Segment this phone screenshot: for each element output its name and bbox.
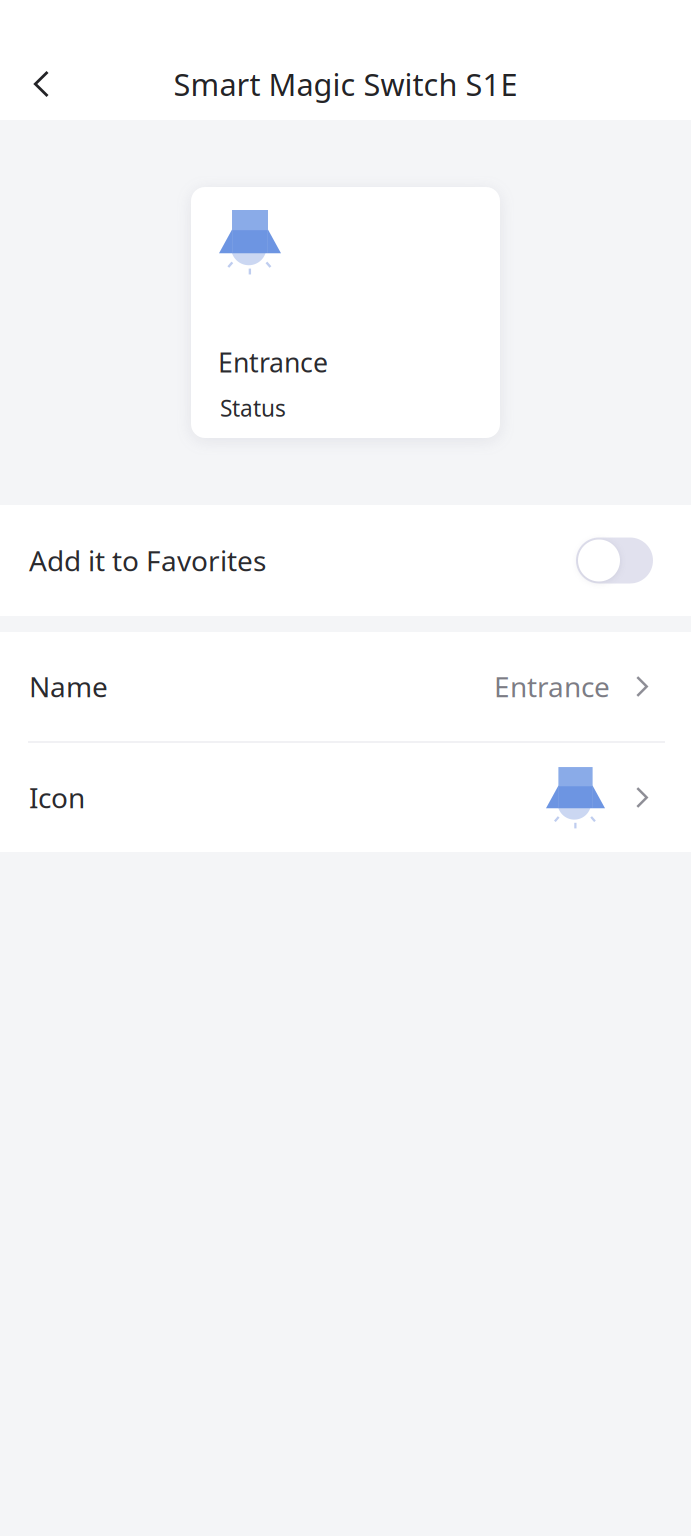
- button[interactable]: Back: [0, 53, 83, 115]
- staticText: Name: [29, 668, 108, 705]
- staticText: Status: [220, 393, 286, 423]
- staticText: Icon: [29, 779, 85, 816]
- staticText: Smart Magic Switch S1E: [173, 64, 517, 104]
- staticText: Entrance: [218, 344, 328, 380]
- button[interactable]: Add it to Favorites: [0, 505, 691, 616]
- button[interactable]: Entrance: [191, 187, 500, 438]
- staticText: Entrance: [494, 668, 610, 705]
- staticText: Add it to Favorites: [29, 542, 266, 579]
- button[interactable]: Icon: [0, 743, 691, 852]
- button[interactable]: Name: [0, 632, 691, 741]
